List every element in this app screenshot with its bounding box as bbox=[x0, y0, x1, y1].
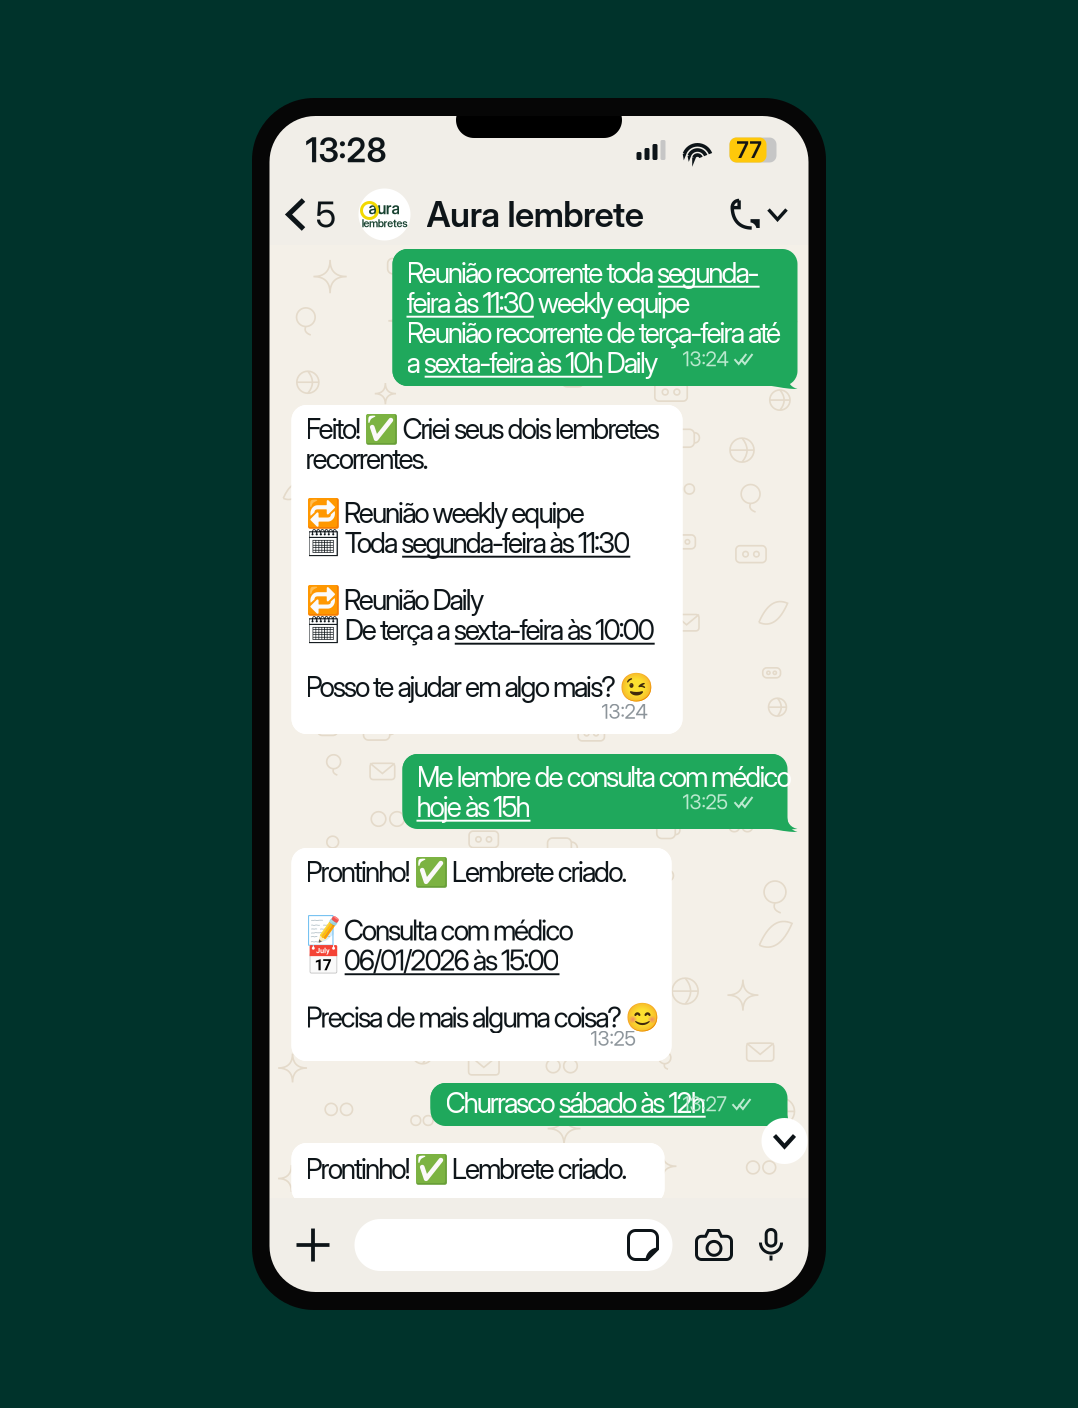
staticText: 77 bbox=[736, 138, 761, 162]
staticText: 13:25 bbox=[682, 791, 728, 813]
staticText: 13:25 bbox=[590, 1028, 636, 1049]
staticText: feira às 11:30 weekly equipe bbox=[406, 288, 690, 317]
staticText: Prontinho! ✅ Lembrete criado. bbox=[305, 857, 627, 887]
staticText: a sexta-feira às 10h Daily bbox=[406, 348, 658, 377]
staticText: hoje às 15h bbox=[416, 792, 530, 821]
button[interactable]: Call bbox=[729, 199, 786, 229]
staticText: 13:28 bbox=[305, 132, 386, 168]
staticText: lembretes bbox=[362, 218, 407, 229]
staticText: recorrentes. bbox=[305, 444, 429, 473]
staticText: Aura lembrete bbox=[426, 196, 644, 233]
button[interactable]: Camera bbox=[696, 1230, 731, 1259]
staticText: 🔁 Reunião weekly equipe bbox=[305, 498, 585, 528]
staticText: 5 bbox=[315, 196, 336, 233]
staticText: 13:27 bbox=[682, 1093, 726, 1115]
button[interactable]: Voice message bbox=[759, 1229, 782, 1260]
button[interactable]: Scroll to bottom bbox=[761, 1118, 807, 1164]
button[interactable]: Attach bbox=[289, 1228, 336, 1261]
staticText: 🔁 Reunião Daily bbox=[305, 585, 484, 615]
staticText: Precisa de mais alguma coisa? 😊 bbox=[305, 1002, 660, 1032]
staticText: 13:24 bbox=[682, 348, 728, 370]
staticText: 📝 Consulta com médico bbox=[305, 915, 573, 945]
staticText: Churrasco sábado às 12h bbox=[445, 1088, 706, 1117]
staticText: Reunião recorrente de terça-feira até bbox=[406, 318, 781, 347]
staticText: Posso te ajudar em algo mais? 😉 bbox=[305, 672, 654, 702]
staticText: Feito! ✅ Criei seus dois lembretes bbox=[305, 414, 660, 444]
staticText: Prontinho! ✅ Lembrete criado. bbox=[305, 1154, 627, 1184]
button[interactable]: Back bbox=[288, 196, 336, 233]
button[interactable]: Stickers bbox=[628, 1230, 672, 1259]
staticText: 🗓 De terça a sexta-feira às 10:00 bbox=[305, 615, 655, 645]
staticText: 🗓 Toda segunda-feira às 11:30 bbox=[305, 528, 630, 558]
staticText: Me lembre de consulta com médico bbox=[416, 762, 792, 791]
staticText: 13:24 bbox=[601, 701, 647, 722]
staticText: aura bbox=[369, 200, 400, 217]
staticText: Reunião recorrente toda segunda- bbox=[406, 258, 760, 287]
button[interactable]: aura bbox=[358, 188, 644, 240]
staticText: 📅 06/01/2026 às 15:00 bbox=[305, 945, 559, 975]
